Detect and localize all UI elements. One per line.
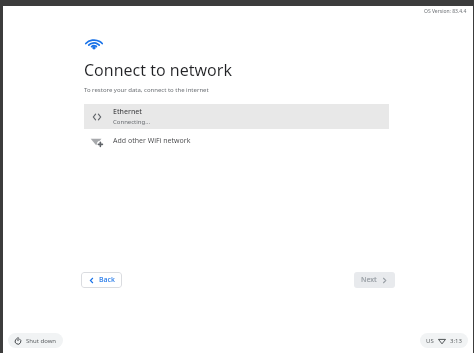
staticText: Shut down — [26, 337, 57, 345]
button[interactable]: Back — [81, 272, 122, 288]
button[interactable]: Add other WiFi network — [84, 129, 389, 153]
staticText: Back — [99, 275, 115, 285]
button[interactable]: Shut down — [8, 333, 63, 348]
button[interactable]: Ethernet — [84, 104, 389, 129]
staticText: Ethernet — [113, 107, 143, 117]
button[interactable]: Status tray — [420, 333, 468, 348]
staticText: Next — [361, 275, 377, 285]
staticText: Add other WiFi network — [113, 136, 191, 146]
staticText: To restore your data, connect to the int… — [84, 86, 209, 94]
staticText: Connecting... — [113, 118, 151, 126]
staticText: 3:13 — [450, 337, 462, 345]
staticText: OS Version: 83.4.4 — [424, 8, 467, 15]
staticText: Connect to network — [84, 59, 232, 81]
staticText: US — [426, 337, 434, 345]
button[interactable]: Next — [354, 272, 395, 288]
